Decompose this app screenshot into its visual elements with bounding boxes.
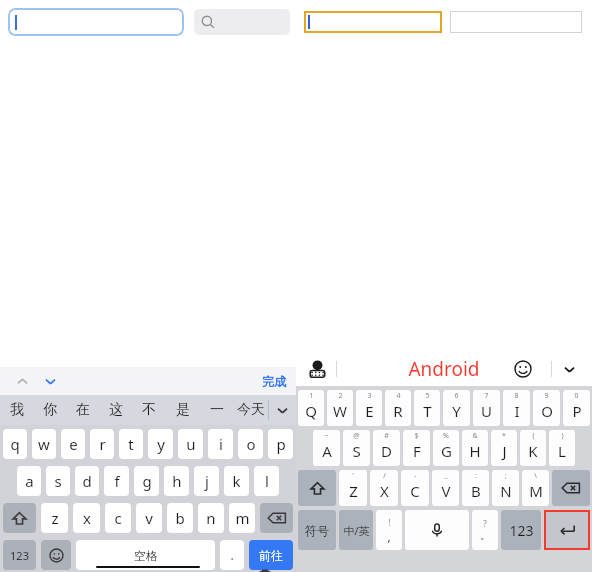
staticText: d (82, 471, 92, 491)
button[interactable]: ; (492, 470, 519, 506)
button[interactable]: q (3, 429, 27, 459)
staticText: R (393, 401, 403, 421)
button[interactable]: d (75, 466, 99, 496)
button[interactable]: t (119, 429, 143, 459)
button[interactable]: k (224, 466, 249, 496)
button[interactable]: : (462, 470, 489, 506)
button[interactable]: Numbers (3, 540, 36, 570)
button[interactable]: h (164, 466, 189, 496)
button[interactable]: 不 (132, 395, 166, 425)
button[interactable]: y (148, 429, 173, 459)
button[interactable]: 7 (473, 390, 500, 426)
button[interactable]: 3 (356, 390, 382, 426)
button[interactable]: 1 (298, 390, 324, 426)
button[interactable]: Dictation (252, 570, 278, 572)
staticText: 7 (484, 391, 489, 401)
button[interactable]: 9 (533, 390, 560, 426)
button[interactable]: u (178, 429, 203, 459)
staticText: ( (532, 431, 535, 441)
staticText: Z (349, 481, 358, 501)
button[interactable]: Previous field (8, 367, 36, 395)
button[interactable]: g (134, 466, 159, 496)
button[interactable]: 是 (166, 395, 200, 425)
button[interactable]: r (90, 429, 114, 459)
button[interactable]: Input settings (304, 356, 330, 382)
button[interactable]: i (208, 429, 233, 459)
button[interactable]: Next field (36, 367, 64, 395)
button[interactable]: c (105, 503, 131, 533)
button[interactable]: 你 (33, 395, 66, 425)
staticText: P (572, 401, 582, 421)
button[interactable]: Symbols (298, 510, 336, 550)
button[interactable]: 4 (385, 390, 411, 426)
button[interactable]: 2 (327, 390, 353, 426)
button[interactable] (8, 8, 184, 36)
button[interactable]: Shift (3, 503, 36, 533)
button[interactable]: 空格 (76, 540, 215, 570)
button[interactable]: m (229, 503, 255, 533)
button[interactable]: # (373, 430, 400, 466)
button[interactable]: e (61, 429, 85, 459)
button[interactable]: Numbers (501, 510, 541, 550)
button[interactable]: @ (343, 430, 370, 466)
button[interactable]: ~ (313, 430, 340, 466)
staticText: Android (408, 356, 480, 382)
button[interactable]: b (167, 503, 193, 533)
button[interactable]: Emoji (510, 356, 536, 382)
button[interactable]: 前往 (249, 540, 293, 570)
button[interactable]: z (41, 503, 68, 533)
button[interactable]: Chinese English toggle (339, 510, 373, 550)
button[interactable]: o (238, 429, 263, 459)
button[interactable]: 我 (0, 395, 33, 425)
button[interactable] (304, 11, 442, 33)
staticText: 今天 (237, 401, 265, 419)
staticText: A (322, 441, 332, 461)
button[interactable]: 今天 (234, 395, 268, 425)
button[interactable]: Hide keyboard (556, 356, 582, 382)
button[interactable]: % (433, 430, 459, 466)
staticText: 1 (309, 391, 314, 401)
button[interactable]: Backspace (552, 470, 590, 506)
button[interactable]: ! (376, 510, 402, 550)
button[interactable]: ) (549, 430, 575, 466)
button[interactable]: ' (339, 470, 367, 506)
button[interactable]: $ (403, 430, 430, 466)
button[interactable]: . (220, 540, 244, 570)
button[interactable]: ? (472, 510, 498, 550)
button[interactable]: Search (194, 9, 290, 35)
button[interactable]: a (17, 466, 41, 496)
button[interactable]: More suggestions (268, 395, 296, 425)
button[interactable]: 6 (443, 390, 470, 426)
button[interactable]: 在 (66, 395, 99, 425)
button[interactable]: 一 (200, 395, 234, 425)
button[interactable]: / (370, 470, 398, 506)
button[interactable]: p (268, 429, 293, 459)
button[interactable]: _ (432, 470, 459, 506)
button[interactable]: w (32, 429, 56, 459)
button[interactable]: Text field (450, 11, 582, 33)
button[interactable]: \ (522, 470, 549, 506)
button[interactable]: Shift (298, 470, 336, 506)
button[interactable]: x (73, 503, 100, 533)
button[interactable]: 8 (503, 390, 530, 426)
button[interactable]: f (104, 466, 129, 496)
button[interactable]: & (462, 430, 488, 466)
button[interactable]: Enter (544, 510, 590, 550)
button[interactable]: 完成 (258, 371, 290, 392)
button[interactable]: Backspace (260, 503, 293, 533)
button[interactable]: 这 (99, 395, 132, 425)
button[interactable]: * (491, 430, 517, 466)
button[interactable]: 5 (414, 390, 440, 426)
button[interactable]: j (194, 466, 219, 496)
button[interactable]: Space (405, 510, 469, 550)
button[interactable]: Emoji (41, 540, 71, 570)
staticText: 在 (76, 401, 90, 419)
button[interactable]: l (254, 466, 279, 496)
button[interactable]: ( (520, 430, 546, 466)
button[interactable]: v (136, 503, 162, 533)
button[interactable]: 0 (563, 390, 590, 426)
button[interactable]: s (46, 466, 70, 496)
button[interactable]: - (401, 470, 429, 506)
button[interactable]: n (198, 503, 224, 533)
